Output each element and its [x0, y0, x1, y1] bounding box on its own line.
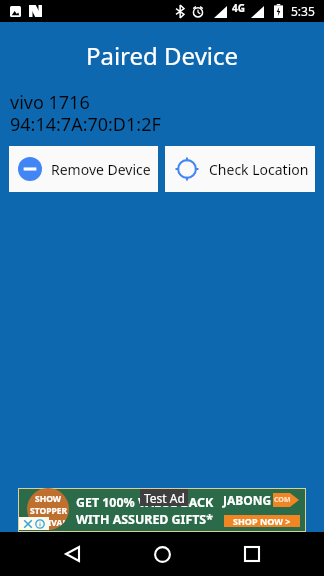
button[interactable]: Remove Device: [9, 146, 158, 192]
button[interactable]: Back: [50, 532, 94, 576]
button[interactable]: Check Location: [165, 146, 315, 192]
staticText: COM: [274, 495, 291, 505]
button[interactable]: SHOW: [19, 489, 305, 531]
staticText: SHOW: [35, 493, 62, 505]
button[interactable]: Recents: [230, 532, 274, 576]
staticText: SHOP NOW >: [233, 515, 291, 527]
staticText: WITH ASSURED GIFTS*: [76, 511, 213, 528]
button[interactable]: SHOP NOW >: [224, 515, 300, 527]
staticText: 5:35: [291, 3, 315, 19]
button[interactable]: Ad info: [35, 519, 45, 529]
button[interactable]: Close ad: [23, 519, 33, 529]
staticText: Check Location: [209, 160, 309, 179]
button[interactable]: Home: [140, 532, 184, 576]
staticText: vivo 1716 94:14:7A:70:D1:2F: [10, 90, 161, 136]
staticText: Test Ad: [144, 490, 185, 506]
staticText: JABONG: [223, 492, 272, 508]
staticText: Paired Device: [0, 39, 324, 72]
staticText: FESTIVAL: [29, 517, 68, 529]
staticText: 17th APRIL: [34, 529, 64, 530]
staticText: Remove Device: [51, 160, 151, 179]
staticText: 4G: [232, 1, 245, 15]
staticText: GET 100% VALUE BACK: [76, 494, 214, 511]
staticText: STOPPER: [30, 505, 68, 517]
